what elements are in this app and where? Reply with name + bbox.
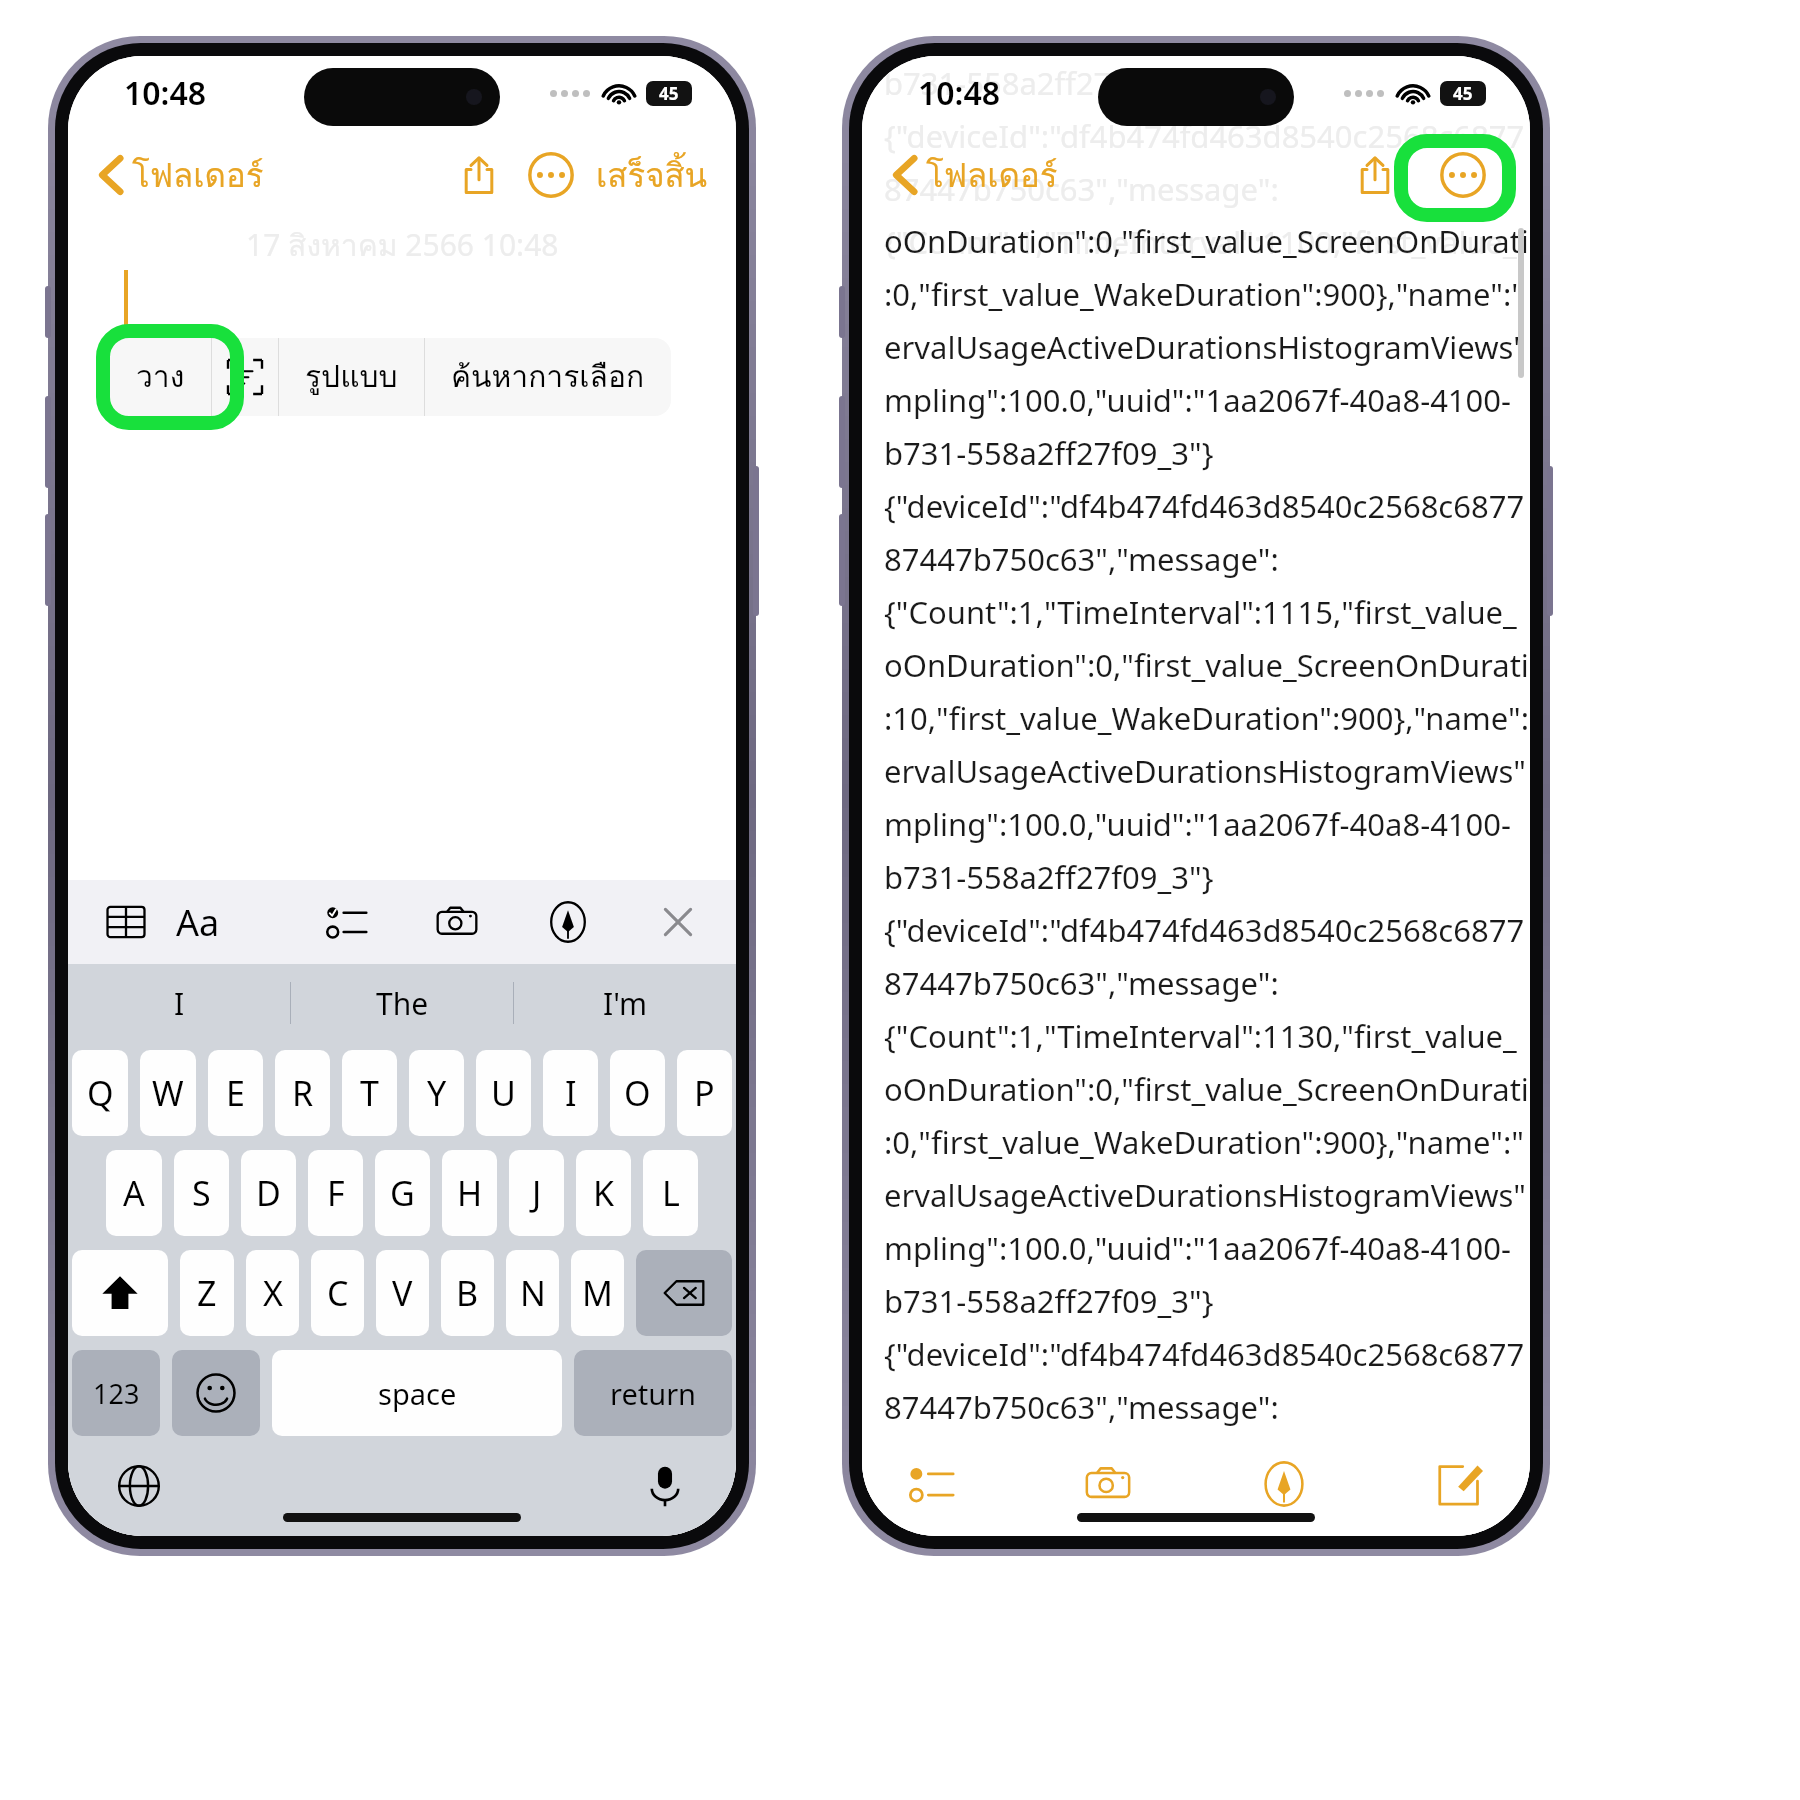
staticText: K bbox=[593, 1170, 615, 1216]
staticText: โฟลเดอร์ bbox=[132, 149, 264, 201]
button[interactable]: Camera bbox=[1070, 1446, 1146, 1522]
button[interactable]: E bbox=[208, 1050, 263, 1136]
button[interactable]: K bbox=[576, 1150, 631, 1236]
button[interactable]: P bbox=[677, 1050, 732, 1136]
button[interactable]: I bbox=[543, 1050, 598, 1136]
staticText: H bbox=[457, 1170, 483, 1216]
button[interactable]: V bbox=[376, 1250, 429, 1336]
button[interactable]: ค้นหาการเลือก bbox=[425, 338, 671, 416]
button[interactable]: Text format bbox=[200, 886, 272, 958]
button[interactable]: X bbox=[246, 1250, 299, 1336]
staticText: B bbox=[456, 1270, 479, 1316]
button[interactable]: Checklist bbox=[894, 1446, 970, 1522]
button[interactable]: F bbox=[308, 1150, 363, 1236]
button[interactable]: R bbox=[275, 1050, 330, 1136]
button[interactable]: L bbox=[643, 1150, 698, 1236]
button[interactable]: Z bbox=[180, 1250, 234, 1336]
staticText: ค้นหาการเลือก bbox=[451, 353, 645, 401]
button[interactable]: T bbox=[342, 1050, 397, 1136]
staticText: T bbox=[360, 1070, 379, 1116]
button[interactable]: S bbox=[174, 1150, 229, 1236]
button[interactable]: Table bbox=[90, 886, 162, 958]
staticText: space bbox=[378, 1374, 457, 1413]
button[interactable]: Backspace bbox=[636, 1250, 732, 1336]
button[interactable]: Close bbox=[642, 886, 714, 958]
button[interactable]: More bbox=[520, 144, 582, 206]
button[interactable]: Markup bbox=[532, 886, 604, 958]
staticText: b731-558a2ff27f09_3"} bbox=[884, 856, 1214, 898]
button[interactable]: Share bbox=[1344, 144, 1406, 206]
staticText: b731-558a2ff27f09_3"} bbox=[884, 62, 1214, 104]
staticText: โฟลเดอร์ bbox=[926, 149, 1058, 201]
staticText: b731-558a2ff27f09_3"} bbox=[884, 1280, 1214, 1322]
staticText: The bbox=[376, 983, 429, 1024]
staticText: 87447b750c63","message": bbox=[884, 1386, 1279, 1428]
staticText: X bbox=[263, 1270, 283, 1316]
staticText: mpling":100.0,"uuid":"1aa2067f-40a8-4100… bbox=[884, 379, 1512, 421]
button[interactable]: D bbox=[241, 1150, 296, 1236]
button[interactable]: Y bbox=[409, 1050, 464, 1136]
button[interactable]: Checklist bbox=[311, 886, 383, 958]
staticText: {"Count":1,"TimeInterval":1115,"first_va… bbox=[884, 591, 1530, 633]
button[interactable]: G bbox=[375, 1150, 430, 1236]
staticText: {"deviceId":"df4b474fd463d8540c2568c6877… bbox=[884, 485, 1530, 527]
button[interactable]: Change keyboard bbox=[108, 1455, 170, 1517]
button[interactable]: รูปแบบ bbox=[279, 338, 424, 416]
button[interactable]: O bbox=[610, 1050, 665, 1136]
staticText: 87447b750c63","message": bbox=[884, 168, 1279, 210]
staticText: W bbox=[152, 1070, 184, 1116]
button[interactable]: เสร็จสิ้น bbox=[588, 143, 716, 207]
button[interactable]: The bbox=[291, 964, 513, 1042]
staticText: 45 bbox=[1453, 82, 1473, 105]
button[interactable]: space bbox=[272, 1350, 562, 1436]
button[interactable]: New note bbox=[1422, 1446, 1498, 1522]
staticText: I bbox=[565, 1070, 577, 1116]
staticText: {"deviceId":"df4b474fd463d8540c2568c6877… bbox=[884, 909, 1530, 951]
staticText: 17 สิงหาคม 2566 10:48 bbox=[246, 222, 559, 270]
button[interactable]: I bbox=[68, 964, 290, 1042]
button[interactable] bbox=[212, 338, 278, 416]
staticText: ervalUsageActiveDurationsHistogramViews"… bbox=[884, 326, 1530, 368]
staticText: วาง bbox=[136, 353, 185, 401]
button[interactable]: J bbox=[509, 1150, 564, 1236]
button[interactable]: B bbox=[441, 1250, 494, 1336]
staticText: b731-558a2ff27f09_3"} bbox=[884, 432, 1214, 474]
button[interactable]: Camera bbox=[421, 886, 493, 958]
button[interactable]: Markup bbox=[1246, 1446, 1322, 1522]
staticText: ervalUsageActiveDurationsHistogramViews"… bbox=[884, 750, 1530, 792]
staticText: mpling":100.0,"uuid":"1aa2067f-40a8-4100… bbox=[884, 1227, 1512, 1269]
button[interactable]: W bbox=[140, 1050, 196, 1136]
button[interactable]: Emoji bbox=[172, 1350, 260, 1436]
button[interactable]: วาง bbox=[110, 338, 211, 416]
button[interactable]: โฟลเดอร์ bbox=[886, 143, 1066, 207]
staticText: M bbox=[582, 1270, 613, 1316]
button[interactable]: โฟลเดอร์ bbox=[92, 143, 272, 207]
button[interactable]: Dictate bbox=[634, 1455, 696, 1517]
button[interactable]: More bbox=[1432, 144, 1494, 206]
staticText: I'm bbox=[603, 983, 648, 1024]
button[interactable]: N bbox=[506, 1250, 559, 1336]
button[interactable]: M bbox=[571, 1250, 624, 1336]
button[interactable]: C bbox=[311, 1250, 364, 1336]
button[interactable]: A bbox=[106, 1150, 162, 1236]
staticText: Z bbox=[197, 1270, 217, 1316]
button[interactable]: I'm bbox=[514, 964, 736, 1042]
button[interactable]: 123 bbox=[72, 1350, 160, 1436]
staticText: :10,"first_value_WakeDuration":900},"nam… bbox=[884, 697, 1530, 739]
button[interactable]: Q bbox=[72, 1050, 128, 1136]
staticText: D bbox=[256, 1170, 281, 1216]
staticText: I bbox=[174, 983, 185, 1024]
button[interactable]: return bbox=[574, 1350, 732, 1436]
button[interactable]: Share bbox=[448, 144, 510, 206]
staticText: E bbox=[226, 1070, 245, 1116]
staticText: S bbox=[192, 1170, 211, 1216]
button[interactable]: H bbox=[442, 1150, 497, 1236]
staticText: Q bbox=[87, 1070, 114, 1116]
button[interactable]: U bbox=[476, 1050, 531, 1136]
button[interactable]: Shift bbox=[72, 1250, 168, 1336]
staticText: A bbox=[123, 1170, 145, 1216]
staticText: R bbox=[292, 1070, 314, 1116]
staticText: P bbox=[694, 1070, 715, 1116]
staticText: O bbox=[624, 1070, 651, 1116]
staticText: {"Count":1,"TimeInterval":1130,"first_va… bbox=[884, 1015, 1530, 1057]
